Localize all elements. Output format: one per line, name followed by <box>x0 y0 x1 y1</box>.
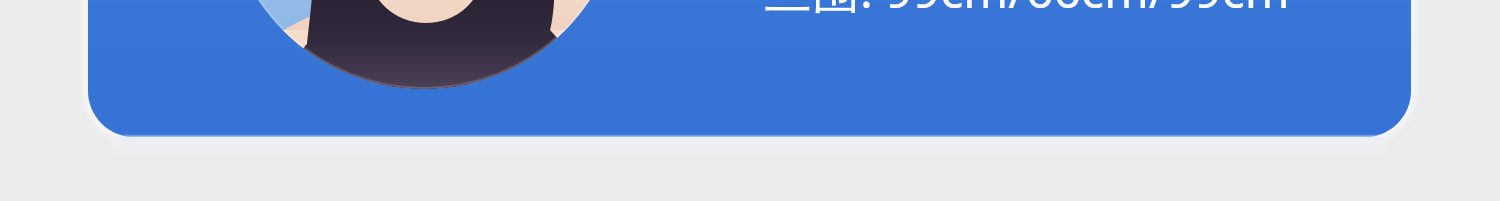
button[interactable]: Measurements 99cm / 66cm / 99cm <box>764 0 1292 14</box>
button[interactable]: Profile header <box>88 0 1411 137</box>
button[interactable]: Profile photo <box>256 0 592 90</box>
